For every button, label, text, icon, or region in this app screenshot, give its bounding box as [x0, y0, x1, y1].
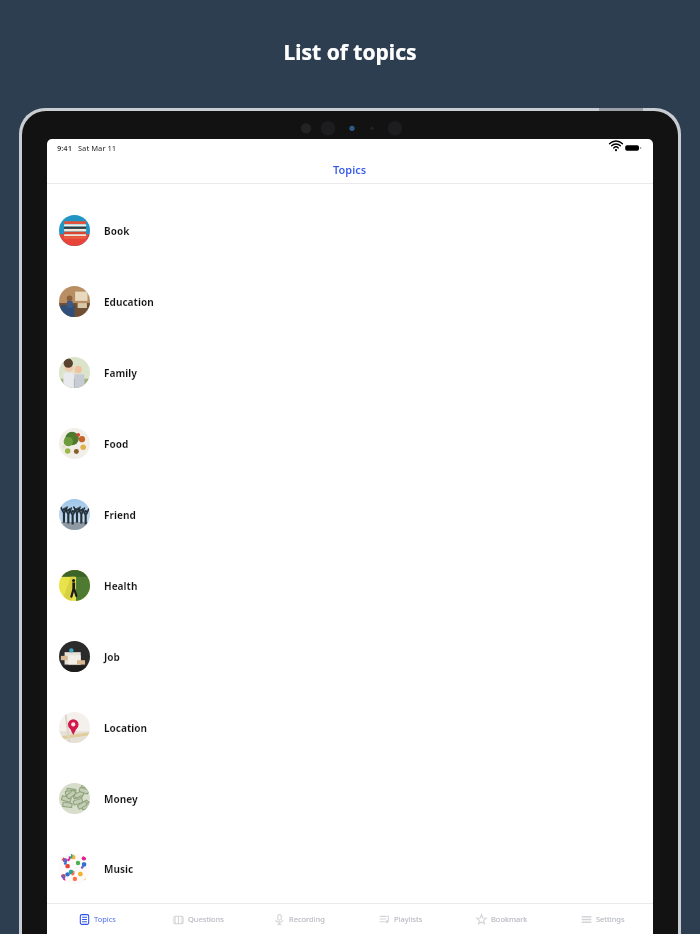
button[interactable]: Money [47, 763, 653, 834]
staticText: Book [104, 224, 130, 238]
staticText: Settings [596, 914, 625, 924]
button[interactable]: Bookmark [451, 904, 552, 934]
staticText: Job [104, 650, 120, 664]
staticText: Friend [104, 508, 136, 522]
staticText: Topics [94, 914, 116, 924]
button[interactable]: Topics [47, 904, 148, 934]
button[interactable]: Location [47, 692, 653, 763]
button[interactable]: Questions [148, 904, 249, 934]
button[interactable]: Job [47, 621, 653, 692]
staticText: List of topics [0, 38, 700, 67]
button[interactable]: Book [47, 195, 653, 266]
staticText: Family [104, 366, 137, 380]
button[interactable]: Family [47, 337, 653, 408]
staticText: Recording [289, 914, 325, 924]
staticText: Money [104, 792, 138, 806]
staticText: Location [104, 721, 148, 735]
staticText: Topics [333, 162, 367, 177]
button[interactable]: Playlists [350, 904, 451, 934]
staticText: Playlists [394, 914, 423, 924]
button[interactable]: Friend [47, 479, 653, 550]
button[interactable]: Music [47, 834, 653, 903]
staticText: Food [104, 437, 129, 451]
staticText: Bookmark [491, 914, 528, 924]
button[interactable]: Education [47, 266, 653, 337]
staticText: 9:41 [57, 143, 72, 153]
staticText: Music [104, 862, 134, 876]
staticText: Health [104, 579, 138, 593]
staticText: Questions [188, 914, 224, 924]
button[interactable]: Recording [249, 904, 350, 934]
button[interactable]: Settings [552, 904, 653, 934]
staticText: Education [104, 295, 154, 309]
button[interactable]: Food [47, 408, 653, 479]
staticText: Sat Mar 11 [78, 143, 117, 153]
button[interactable]: Health [47, 550, 653, 621]
